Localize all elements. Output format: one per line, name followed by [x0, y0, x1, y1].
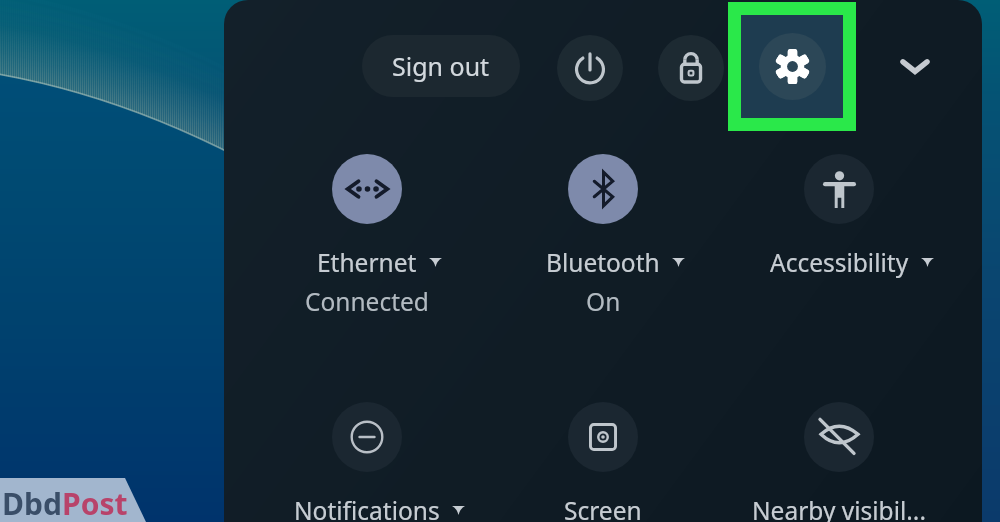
- button[interactable]: Nearby visibility: [721, 402, 957, 522]
- button[interactable]: Screen: [485, 402, 721, 522]
- button[interactable]: Sign out: [362, 35, 520, 97]
- staticText: Screen: [564, 494, 642, 522]
- staticText: Sign out: [392, 49, 490, 83]
- staticText: Dbd: [2, 483, 62, 522]
- staticText: Nearby visibil...: [752, 494, 926, 522]
- button[interactable]: Power: [557, 35, 623, 101]
- staticText: Connected: [305, 285, 429, 318]
- staticText: Notifications: [294, 494, 440, 522]
- staticText: Accessibility: [770, 246, 909, 279]
- staticText: Ethernet: [317, 246, 417, 279]
- button[interactable]: Collapse: [884, 35, 946, 97]
- staticText: Bluetooth: [546, 246, 660, 279]
- button[interactable]: Settings: [741, 15, 843, 118]
- button[interactable]: Bluetooth: [485, 154, 721, 318]
- staticText: Post: [62, 483, 128, 522]
- button[interactable]: Accessibility: [721, 154, 957, 279]
- button[interactable]: Ethernet: [249, 154, 485, 318]
- button[interactable]: Lock: [658, 35, 724, 101]
- staticText: On: [586, 285, 621, 318]
- button[interactable]: Notifications: [249, 402, 485, 522]
